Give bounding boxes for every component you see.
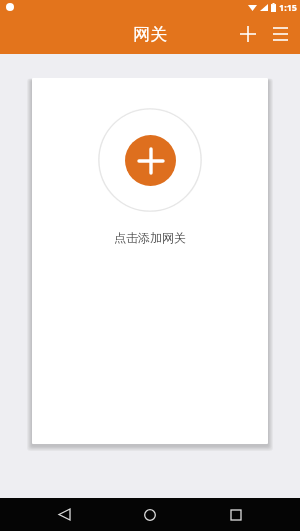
button[interactable]: Menu <box>264 18 296 50</box>
staticText: 1:15 <box>279 1 297 13</box>
button[interactable]: Back <box>42 498 86 531</box>
staticText: 网关 <box>133 24 167 45</box>
button[interactable]: Recent apps <box>214 498 258 531</box>
button[interactable]: Add gateway <box>232 18 264 50</box>
button[interactable]: Home <box>128 498 172 531</box>
button[interactable]: 点击添加网关 <box>114 230 186 245</box>
button[interactable]: Add gateway <box>98 108 202 212</box>
